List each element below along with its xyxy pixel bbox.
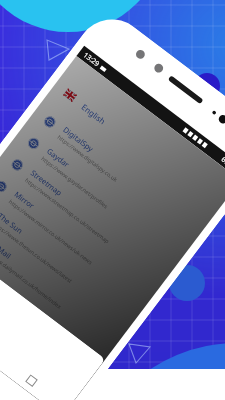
button[interactable]: Gaydar [21, 129, 191, 267]
staticText: English [80, 101, 109, 127]
button[interactable]: Recents [17, 367, 45, 395]
staticText: The Sun [0, 211, 25, 236]
button[interactable]: Metro [0, 237, 110, 375]
staticText: Streetmap [29, 167, 64, 198]
staticText: https://www.streetmap.co.uk/streetmap [24, 176, 111, 245]
button[interactable]: Daily Mail [0, 215, 126, 353]
button[interactable]: English [58, 81, 225, 219]
button[interactable]: DigitalSpy [37, 108, 207, 246]
staticText: 69% [219, 155, 225, 171]
staticText: https://www.digitalspy.co.uk [56, 133, 120, 183]
button[interactable]: Sky News [0, 258, 93, 396]
button[interactable]: Streetmap [5, 151, 175, 289]
button[interactable]: The Sun [0, 194, 142, 332]
staticText: Gaydar [45, 146, 72, 170]
staticText: https://www.thesun.co.uk/news/latest [0, 219, 74, 285]
staticText: https://metro.co.uk/news/uk [0, 262, 22, 313]
button[interactable]: Mirror [0, 172, 159, 310]
staticText: https://www.gaydar.net/profiles [40, 155, 110, 210]
staticText: https://www.mirror.co.uk/news/uk-news [8, 198, 95, 266]
button[interactable]: BBC News [0, 280, 77, 400]
staticText: 13:29 [81, 50, 101, 69]
staticText: DigitalSpy [61, 124, 96, 154]
staticText: Mirror [12, 189, 37, 211]
staticText: https://www.dailymail.co.uk/home/index [0, 241, 63, 310]
staticText: Daily Mail [0, 232, 14, 261]
